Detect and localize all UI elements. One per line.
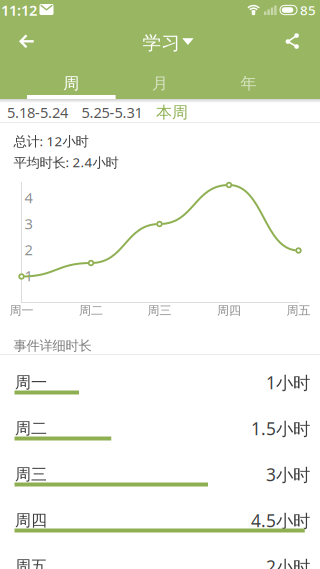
staticText: 1.5小时: [251, 417, 310, 440]
staticText: 5.25-5.31: [81, 103, 142, 122]
staticText: 5.18-5.24: [7, 103, 68, 122]
staticText: 周四: [15, 511, 47, 530]
staticText: 周三: [147, 303, 171, 318]
button[interactable]: 5.18-5.24: [7, 103, 68, 122]
staticText: 2: [24, 240, 32, 259]
staticText: 4: [24, 188, 32, 207]
staticText: 学习: [142, 32, 180, 54]
staticText: 周五: [15, 557, 47, 569]
staticText: 11:12: [1, 0, 37, 20]
staticText: 周五: [286, 303, 310, 318]
staticText: 事件详细时长: [13, 337, 91, 354]
button[interactable]: 周五: [0, 548, 320, 569]
staticText: 1小时: [266, 371, 310, 394]
button[interactable]: 周二: [0, 410, 320, 456]
staticText: 年: [240, 74, 256, 93]
staticText: 周一: [9, 303, 33, 318]
button[interactable]: 月: [116, 64, 204, 103]
button[interactable]: 周三: [0, 456, 320, 502]
button[interactable]: 本周: [156, 102, 188, 122]
button[interactable]: 周: [27, 64, 116, 103]
button[interactable]: 年: [204, 64, 293, 103]
button[interactable]: 周一: [0, 364, 320, 410]
staticText: 2小时: [266, 555, 310, 569]
staticText: 周: [63, 74, 79, 93]
staticText: 1: [24, 266, 32, 285]
staticText: 月: [152, 74, 168, 93]
staticText: 周三: [15, 465, 47, 484]
button[interactable]: Share: [275, 23, 309, 59]
staticText: 周四: [217, 303, 241, 318]
staticText: 周一: [15, 373, 47, 392]
button[interactable]: 学习: [137, 20, 199, 60]
button[interactable]: 周四: [0, 502, 320, 548]
staticText: 85: [300, 1, 316, 19]
staticText: 3小时: [266, 463, 310, 486]
button[interactable]: 5.25-5.31: [81, 103, 142, 122]
staticText: 总计: 12小时: [13, 132, 88, 150]
staticText: 周二: [79, 303, 103, 318]
staticText: 3: [24, 214, 32, 233]
staticText: 周二: [15, 419, 47, 438]
staticText: 平均时长: 2.4小时: [13, 153, 118, 171]
staticText: 本周: [156, 102, 188, 122]
staticText: 4.5小时: [251, 509, 310, 532]
button[interactable]: Back: [7, 22, 46, 60]
